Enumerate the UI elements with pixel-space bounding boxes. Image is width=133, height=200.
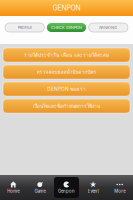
button[interactable]: Home xyxy=(0,175,27,200)
button[interactable]: GENPON ของเรา xyxy=(3,82,130,96)
staticText: ตรวจสอบยอดน้ำมันจากบัตร xyxy=(36,68,96,76)
button[interactable]: RANKING xyxy=(89,23,128,32)
button[interactable]: Game xyxy=(27,175,53,200)
staticText: GENPON xyxy=(52,4,80,12)
button[interactable]: PROFILE xyxy=(5,23,44,32)
staticText: CHECK GENPON xyxy=(51,25,82,30)
staticText: Event xyxy=(88,189,99,194)
staticText: More xyxy=(114,189,125,194)
staticText: PROFILE xyxy=(18,25,32,30)
button[interactable]: รายได้ประจำวัน เดือน และรายได้สะสม xyxy=(3,48,130,62)
staticText: GENPON ของเรา xyxy=(47,85,86,93)
button[interactable]: เงื่อนไขและข้อกำหนดการใช้งาน xyxy=(3,99,130,113)
staticText: Game xyxy=(34,189,45,194)
button[interactable]: More xyxy=(106,175,133,200)
staticText: Genpon xyxy=(58,189,75,194)
button[interactable]: ตรวจสอบยอดน้ำมันจากบัตร xyxy=(3,65,130,79)
staticText: เงื่อนไขและข้อกำหนดการใช้งาน xyxy=(33,102,100,110)
staticText: RANKING xyxy=(99,25,117,30)
button[interactable]: CHECK GENPON xyxy=(47,23,86,32)
staticText: Home xyxy=(7,189,19,194)
button[interactable]: Genpon xyxy=(53,175,80,200)
staticText: รายได้ประจำวัน เดือน และรายได้สะสม xyxy=(24,51,109,59)
button[interactable]: Event xyxy=(80,175,106,200)
